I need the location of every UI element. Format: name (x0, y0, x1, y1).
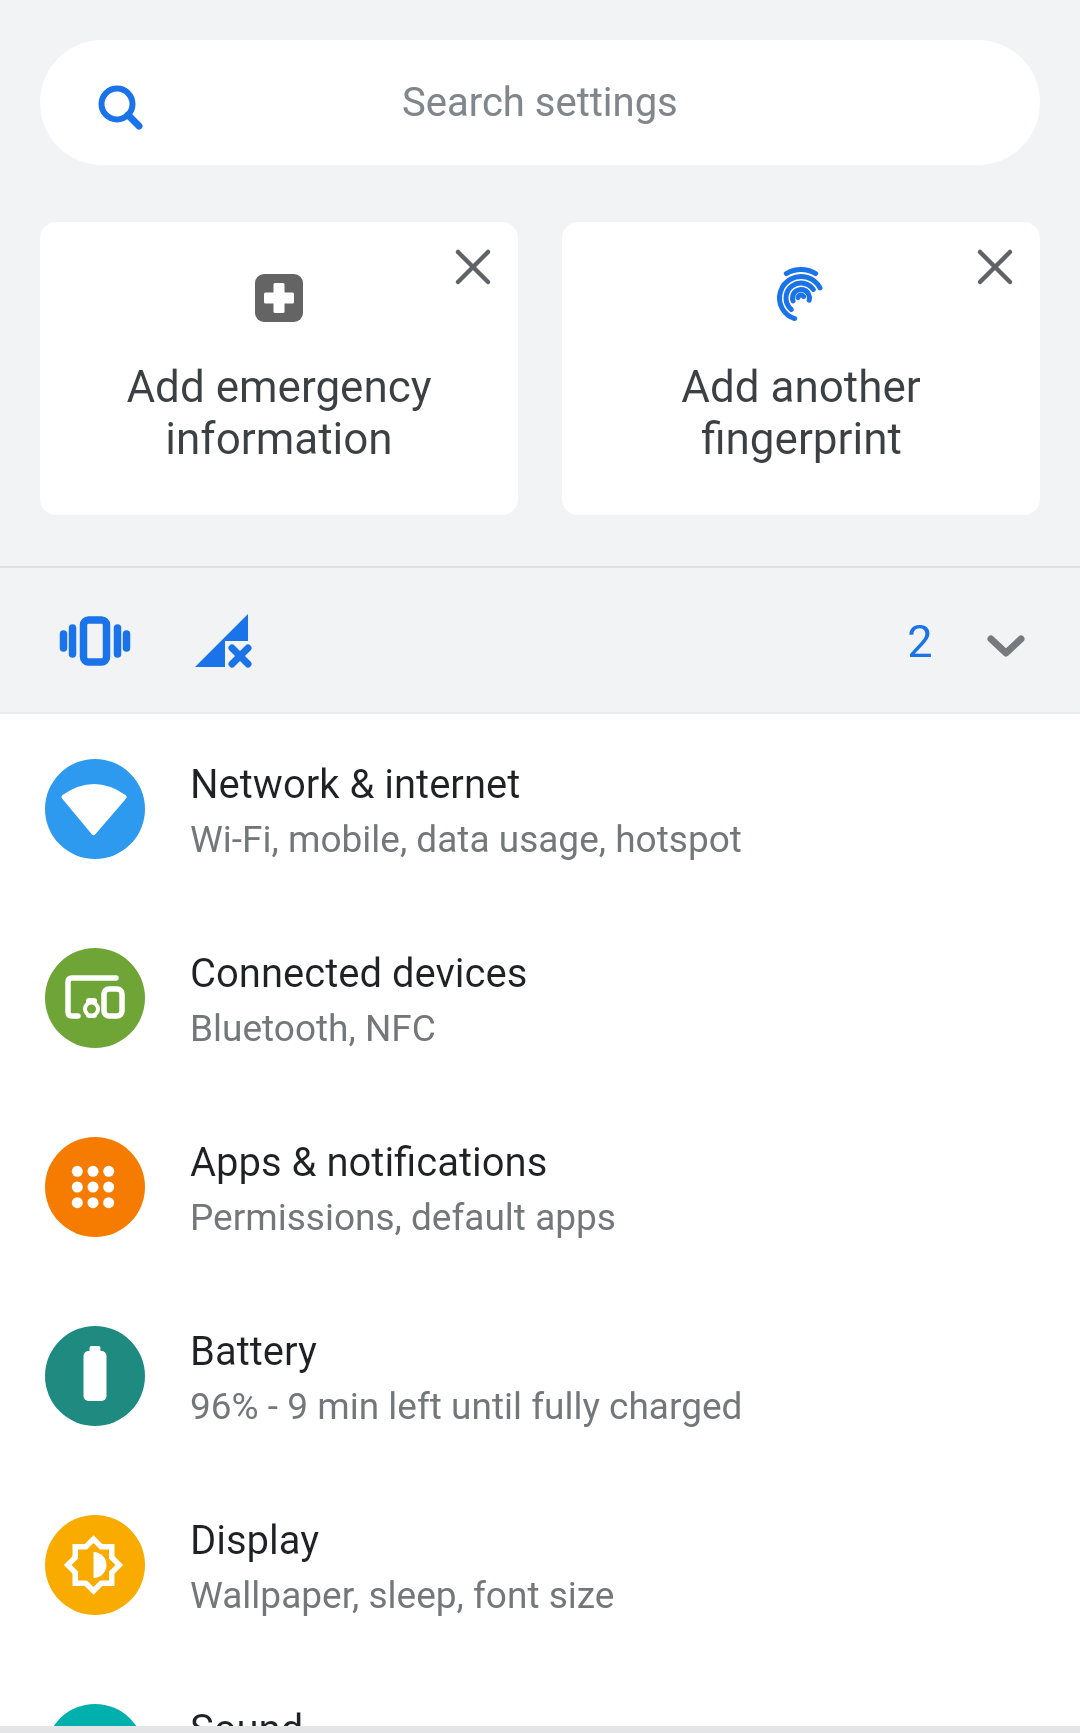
button[interactable]: Network & internet (0, 714, 1080, 903)
button[interactable]: Battery (0, 1281, 1080, 1470)
staticText: Sound (190, 1706, 304, 1733)
staticText: Network & internet (190, 761, 521, 808)
staticText: Search settings (402, 79, 678, 126)
button[interactable] (455, 249, 491, 285)
button[interactable]: Apps & notifications (0, 1092, 1080, 1281)
staticText: Display (190, 1517, 320, 1564)
staticText: Wallpaper, sleep, font size (190, 1574, 615, 1617)
button[interactable]: 2 (0, 568, 1080, 714)
staticText: Permissions, default apps (190, 1196, 616, 1239)
button[interactable]: Display (0, 1470, 1080, 1659)
staticText: Connected devices (190, 950, 528, 997)
staticText: Battery (190, 1328, 317, 1375)
button[interactable]: Connected devices (0, 903, 1080, 1092)
staticText: Add emergency (126, 361, 432, 413)
button[interactable]: Add another (562, 222, 1040, 515)
button[interactable] (977, 249, 1013, 285)
button[interactable]: Search settings (40, 40, 1040, 165)
staticText: fingerprint (701, 413, 902, 465)
staticText: 96% - 9 min left until fully charged (190, 1385, 743, 1428)
staticText: Apps & notifications (190, 1139, 548, 1186)
staticText: Bluetooth, NFC (190, 1007, 436, 1050)
staticText: Add another (681, 361, 921, 413)
button[interactable]: Sound (0, 1659, 1080, 1733)
staticText: Wi-Fi, mobile, data usage, hotspot (190, 818, 742, 861)
staticText: information (165, 413, 393, 465)
button[interactable]: Add emergency (40, 222, 518, 515)
staticText: 2 (895, 615, 945, 668)
